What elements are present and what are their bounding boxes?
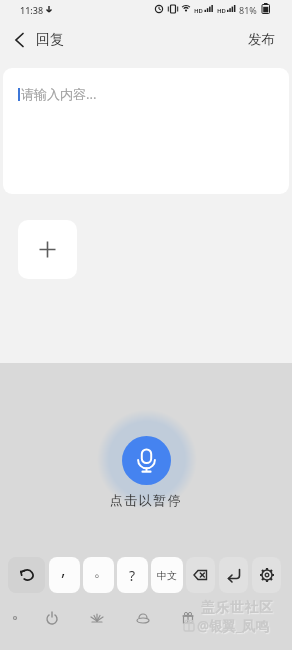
staticText: 发布 <box>248 31 275 48</box>
staticText: 盖乐世社区 <box>201 599 274 616</box>
staticText: 81% <box>239 4 257 16</box>
button[interactable] <box>133 608 153 628</box>
staticText: 点击以暂停 <box>0 492 292 508</box>
staticText: @银翼_凤鸣 <box>197 617 269 635</box>
staticText: HD <box>217 7 226 15</box>
staticText: ? <box>129 566 136 585</box>
button[interactable] <box>122 436 171 485</box>
button[interactable]: ? <box>117 557 148 593</box>
staticText: HD <box>194 7 203 15</box>
button[interactable] <box>8 557 45 593</box>
button[interactable] <box>178 608 198 628</box>
button[interactable] <box>252 557 281 593</box>
button[interactable]: 。 <box>83 557 114 593</box>
staticText: 。 <box>94 563 108 581</box>
button[interactable] <box>5 608 25 628</box>
staticText: 中文 <box>157 569 177 582</box>
button[interactable] <box>219 557 248 593</box>
button[interactable] <box>18 220 77 279</box>
staticText: 11:38 <box>20 4 44 16</box>
button[interactable] <box>87 608 107 628</box>
button[interactable]: , <box>49 557 80 593</box>
button[interactable]: 发布 <box>238 26 284 53</box>
button[interactable] <box>186 557 215 593</box>
staticText: 回复 <box>36 31 64 49</box>
button[interactable]: 请输入内容... <box>3 68 289 194</box>
button[interactable]: 中文 <box>151 557 183 593</box>
staticText: 请输入内容... <box>21 85 97 103</box>
button[interactable] <box>6 27 32 53</box>
staticText: , <box>61 558 66 581</box>
button[interactable] <box>42 608 62 628</box>
